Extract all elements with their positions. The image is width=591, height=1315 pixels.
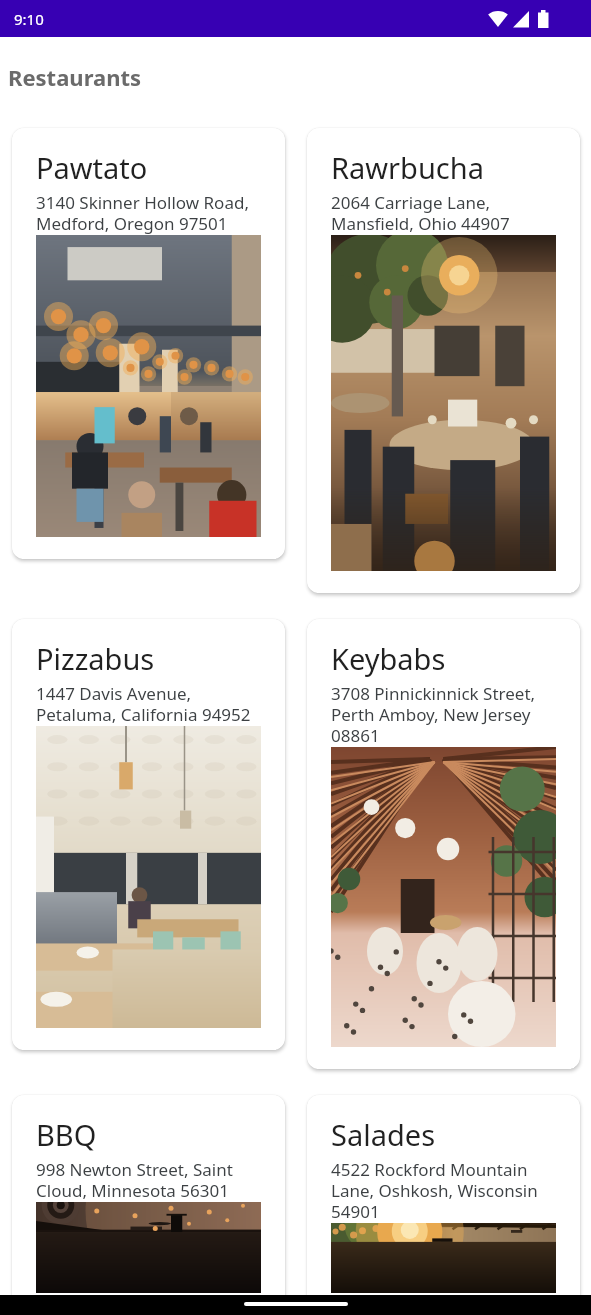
staticText: Pawtato — [36, 148, 148, 187]
button[interactable]: Rawrbucha — [307, 128, 580, 593]
staticText: 1447 Davis Avenue, Petaluma, California … — [36, 682, 251, 726]
staticText: Salades — [331, 1115, 436, 1154]
staticText: 4522 Rockford Mountain Lane, Oshkosh, Wi… — [331, 1158, 538, 1223]
button[interactable]: Salades — [307, 1095, 580, 1315]
button[interactable]: Pawtato — [12, 128, 285, 559]
staticText: Restaurants — [8, 62, 142, 92]
button[interactable]: BBQ — [12, 1095, 285, 1315]
button[interactable]: Keybabs — [307, 619, 580, 1069]
staticText: Pizzabus — [36, 639, 155, 678]
staticText: 998 Newton Street, Saint Cloud, Minnesot… — [36, 1158, 233, 1202]
staticText: 2064 Carriage Lane, Mansfield, Ohio 4490… — [331, 191, 510, 235]
staticText: Rawrbucha — [331, 148, 484, 187]
staticText: BBQ — [36, 1115, 97, 1154]
staticText: 3140 Skinner Hollow Road, Medford, Orego… — [36, 191, 249, 235]
staticText: 3708 Pinnickinnick Street, Perth Amboy, … — [331, 682, 536, 747]
button[interactable]: Pizzabus — [12, 619, 285, 1050]
staticText: 9:10 — [14, 9, 44, 29]
staticText: Keybabs — [331, 639, 446, 678]
